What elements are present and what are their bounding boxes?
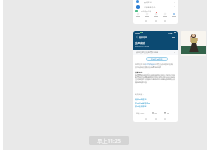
staticText: 生活愉快工作顺利万事如意心想事成谢谢合作	[135, 78, 175, 81]
staticText: 早上11:25	[97, 137, 121, 144]
button[interactable]: 早上11:25	[89, 136, 129, 145]
staticText: 您好关于您	[135, 63, 145, 66]
other: Back	[136, 36, 138, 38]
staticText: 相关链接：	[135, 93, 144, 95]
staticText: 102	[154, 112, 158, 114]
staticText: 已完成的订单	[141, 10, 152, 12]
staticText: 11:25	[168, 32, 173, 34]
button[interactable]: Tab 1	[133, 12, 142, 19]
staticText: 交易成功	[135, 42, 145, 45]
staticText: ×	[174, 51, 176, 54]
staticText: 并完成相关操作以免影响您的	[135, 66, 161, 69]
staticText: 订单服务中心	[144, 6, 156, 8]
staticText: 常见问题解答说明	[135, 102, 151, 104]
staticText: VoLTE	[135, 32, 140, 34]
staticText: 2024-03-18 11:24:56	[135, 45, 150, 47]
button[interactable]: Tab 4	[160, 12, 169, 19]
staticText: 38	[167, 112, 170, 114]
button[interactable]: Tab 2	[142, 12, 151, 19]
staticText: 温馨提示	[135, 71, 143, 73]
staticText: 账单明细查询	[135, 98, 147, 100]
staticText: 已经生成请及时查看	[155, 63, 173, 66]
button[interactable]: 查看交易详情	[146, 57, 168, 61]
staticText: 查看交易详情	[151, 58, 163, 60]
staticText: 顺祝商祺万安	[135, 81, 147, 84]
button[interactable]: Photo	[181, 31, 206, 56]
staticText: 处理相关问题感谢您对我们的支持与信任祝您	[135, 76, 175, 79]
staticText: 联系在线客服	[135, 105, 147, 107]
staticText: 该笔交易正在处理中请稍	[136, 51, 158, 54]
staticText: ›	[174, 5, 175, 8]
staticText: 如需帮助请联系在线客服我们将在小时内为您	[135, 74, 175, 77]
button[interactable]: VoLTE	[133, 31, 178, 122]
staticText: 阅读 1205	[136, 112, 145, 114]
button[interactable]: 微信支付	[133, 0, 178, 24]
staticText: ›	[174, 1, 175, 4]
staticText: 微信支付	[144, 1, 152, 3]
staticText: 本月的账单	[145, 63, 155, 66]
staticText: 账单详情	[139, 36, 147, 39]
button[interactable]: Tab 5	[169, 12, 178, 19]
button[interactable]: Tab 3	[151, 12, 160, 19]
